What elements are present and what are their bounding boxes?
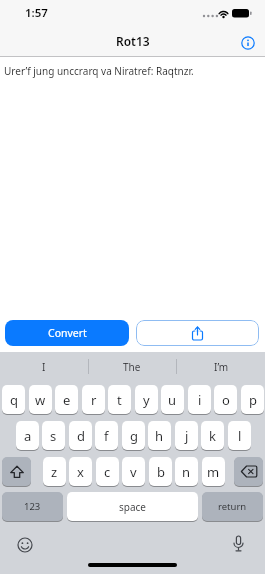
staticText: w: [35, 391, 46, 409]
staticText: z: [51, 463, 58, 481]
staticText: Rot13: [116, 33, 150, 49]
button[interactable]: w: [29, 385, 52, 414]
button[interactable]: The: [88, 352, 176, 381]
button[interactable]: k: [201, 421, 224, 450]
staticText: h: [155, 427, 164, 445]
button[interactable]: j: [175, 421, 198, 450]
staticText: return: [218, 500, 247, 513]
button[interactable]: l: [228, 421, 251, 450]
button[interactable]: c: [96, 457, 119, 486]
staticText: g: [130, 427, 138, 445]
button[interactable]: s: [42, 421, 65, 450]
staticText: n: [182, 463, 191, 481]
staticText: p: [249, 391, 257, 409]
button[interactable]: [234, 457, 263, 486]
staticText: I: [42, 360, 46, 374]
staticText: x: [77, 463, 84, 481]
button[interactable]: [228, 532, 248, 556]
staticText: 1:57: [25, 5, 48, 21]
staticText: t: [117, 391, 122, 409]
staticText: Convert: [48, 326, 87, 340]
button[interactable]: h: [148, 421, 171, 450]
button[interactable]: t: [108, 385, 131, 414]
button[interactable]: a: [16, 421, 39, 450]
button[interactable]: [136, 320, 259, 346]
staticText: l: [238, 427, 242, 445]
button[interactable]: p: [241, 385, 264, 414]
staticText: e: [63, 391, 71, 409]
staticText: u: [168, 391, 177, 409]
staticText: y: [143, 391, 150, 409]
button[interactable]: I: [0, 352, 88, 381]
staticText: I’m: [214, 360, 229, 374]
button[interactable]: space: [67, 492, 198, 521]
button[interactable]: 123: [2, 492, 63, 521]
staticText: s: [50, 427, 57, 445]
staticText: i: [198, 391, 202, 409]
button[interactable]: m: [202, 457, 225, 486]
staticText: k: [209, 427, 216, 445]
staticText: c: [104, 463, 111, 481]
staticText: r: [91, 391, 97, 409]
staticText: d: [77, 427, 85, 445]
staticText: 123: [24, 500, 41, 513]
button[interactable]: o: [214, 385, 237, 414]
staticText: f: [104, 427, 109, 445]
button[interactable]: r: [82, 385, 105, 414]
staticText: v: [130, 463, 137, 481]
button[interactable]: z: [43, 457, 66, 486]
staticText: Urer’f jung unccrarq va Niratref: Raqtnz…: [4, 64, 194, 78]
button[interactable]: x: [69, 457, 92, 486]
button[interactable]: d: [69, 421, 92, 450]
button[interactable]: q: [2, 385, 25, 414]
button[interactable]: u: [161, 385, 184, 414]
button[interactable]: y: [135, 385, 158, 414]
button[interactable]: [238, 33, 258, 53]
staticText: q: [10, 391, 18, 409]
button[interactable]: b: [149, 457, 172, 486]
button[interactable]: i: [188, 385, 211, 414]
button[interactable]: v: [122, 457, 145, 486]
button[interactable]: n: [175, 457, 198, 486]
staticText: a: [24, 427, 32, 445]
button[interactable]: g: [122, 421, 145, 450]
staticText: b: [157, 463, 165, 481]
staticText: m: [207, 463, 220, 481]
button[interactable]: I’m: [177, 352, 265, 381]
button[interactable]: e: [55, 385, 78, 414]
staticText: space: [119, 500, 146, 514]
button[interactable]: f: [95, 421, 118, 450]
button[interactable]: [14, 534, 36, 556]
staticText: o: [222, 391, 230, 409]
button[interactable]: [2, 457, 31, 486]
staticText: j: [185, 427, 189, 445]
button[interactable]: return: [202, 492, 263, 521]
staticText: The: [123, 360, 141, 374]
button[interactable]: Convert: [5, 320, 129, 346]
